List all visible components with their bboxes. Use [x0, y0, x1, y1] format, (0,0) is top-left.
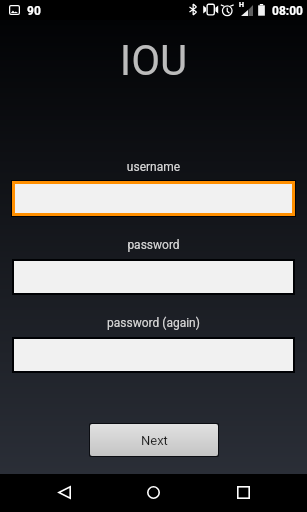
button[interactable]: Recents	[221, 473, 265, 511]
staticText: password	[0, 238, 307, 252]
staticText: H	[239, 1, 244, 9]
button[interactable]: Back	[42, 473, 86, 511]
staticText: 90	[27, 4, 41, 18]
button[interactable]: Home	[131, 473, 175, 511]
staticText: 08:00	[272, 4, 303, 18]
staticText: IOU	[0, 36, 307, 85]
staticText: Next	[141, 433, 168, 448]
staticText: username	[0, 160, 307, 174]
staticText: password (again)	[0, 316, 307, 330]
button[interactable]: Next	[90, 424, 218, 456]
